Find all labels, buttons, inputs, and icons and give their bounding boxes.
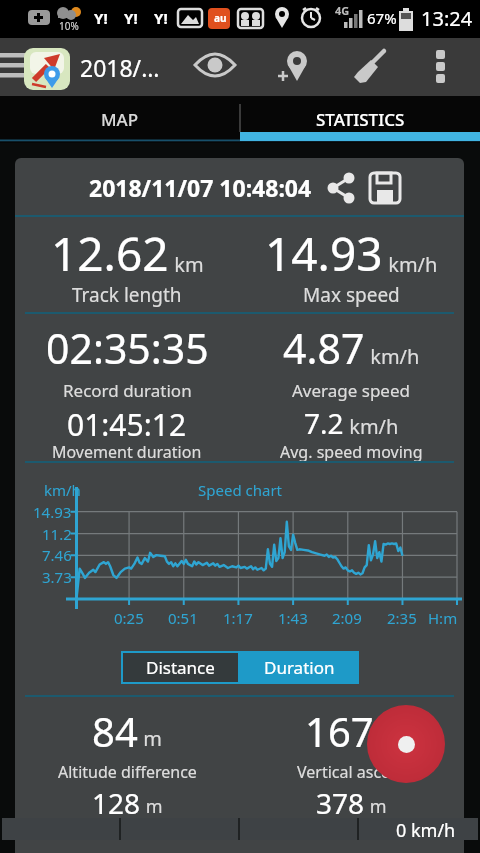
- staticText: 0:25: [114, 608, 144, 628]
- staticText: Average speed: [292, 379, 410, 402]
- button[interactable]: [268, 44, 322, 90]
- staticText: 7.2: [304, 404, 344, 442]
- staticText: 12.62: [51, 222, 169, 285]
- staticText: 128: [92, 784, 141, 822]
- staticText: 0:51: [168, 608, 198, 628]
- staticText: 0 km/h: [396, 818, 456, 840]
- button[interactable]: Duration: [240, 651, 359, 684]
- staticText: 67%: [367, 8, 397, 28]
- staticText: m: [138, 725, 162, 752]
- staticText: Y!: [154, 8, 168, 28]
- staticText: 167: [305, 704, 374, 758]
- button[interactable]: [424, 44, 464, 90]
- staticText: Y!: [124, 8, 138, 28]
- staticText: m: [365, 794, 387, 819]
- staticText: km/h: [383, 251, 438, 278]
- button[interactable]: Distance: [121, 651, 240, 684]
- staticText: km/h: [44, 480, 81, 500]
- staticText: Movement duration: [52, 441, 202, 463]
- staticText: km/h: [344, 413, 399, 440]
- staticText: 4.87: [283, 320, 365, 376]
- staticText: STATISTICS: [316, 108, 405, 131]
- button[interactable]: [367, 705, 445, 783]
- staticText: Y!: [94, 8, 108, 28]
- staticText: Duration: [264, 656, 335, 679]
- button[interactable]: [367, 171, 403, 205]
- staticText: Altitude difference: [58, 761, 197, 783]
- staticText: m: [141, 794, 163, 819]
- staticText: Track length: [72, 282, 182, 308]
- staticText: Speed chart: [198, 480, 283, 500]
- button[interactable]: [0, 38, 34, 96]
- staticText: 1:17: [223, 608, 253, 628]
- staticText: H:m: [428, 608, 458, 628]
- staticText: 14.93: [265, 222, 383, 285]
- button[interactable]: MAP: [0, 96, 240, 143]
- staticText: 01:45:12: [67, 404, 187, 445]
- staticText: 13:24: [421, 5, 473, 32]
- staticText: 2018/…: [80, 52, 160, 82]
- staticText: 378: [316, 784, 365, 822]
- staticText: Record duration: [63, 379, 192, 402]
- staticText: 10%: [59, 19, 79, 33]
- staticText: 84: [92, 704, 138, 758]
- button[interactable]: [342, 44, 394, 90]
- staticText: au: [214, 11, 227, 25]
- staticText: 4G: [335, 3, 350, 18]
- staticText: MAP: [101, 108, 139, 131]
- staticText: 11.2: [42, 524, 72, 544]
- staticText: 3.73: [42, 567, 72, 587]
- staticText: Vertical ascent: [297, 761, 406, 783]
- button[interactable]: [188, 44, 242, 90]
- staticText: 7.46: [42, 545, 72, 565]
- staticText: 2:35: [387, 608, 417, 628]
- staticText: Avg. speed moving: [280, 441, 423, 463]
- staticText: 02:35:35: [46, 320, 209, 376]
- staticText: 2:09: [332, 608, 362, 628]
- staticText: 14.93: [33, 502, 72, 522]
- button[interactable]: STATISTICS: [240, 96, 480, 143]
- staticText: km: [169, 251, 204, 278]
- staticText: Max speed: [303, 282, 400, 308]
- button[interactable]: [323, 171, 359, 205]
- staticText: 2018/11/07 10:48:04: [89, 172, 312, 203]
- staticText: 1:43: [278, 608, 308, 628]
- staticText: Distance: [146, 656, 215, 679]
- staticText: km/h: [365, 343, 420, 370]
